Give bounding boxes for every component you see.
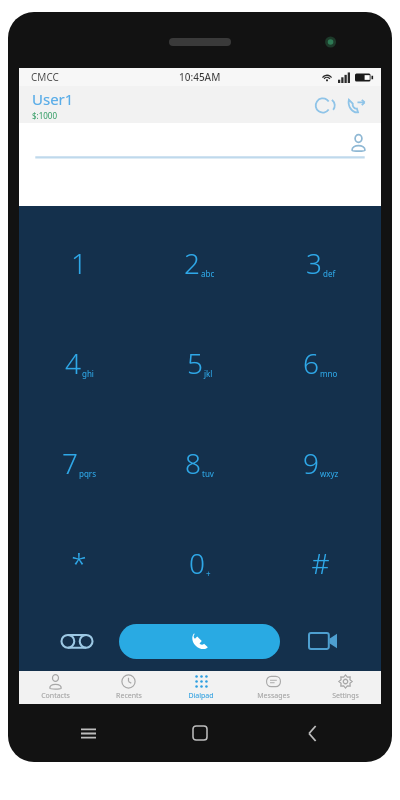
staticText: 0 [189,544,205,582]
button[interactable]: Settings [309,671,381,704]
staticText: Contacts [41,691,70,701]
staticText: + [206,568,211,579]
staticText: CMCC [31,70,59,84]
button[interactable]: 7 [19,413,139,513]
button[interactable]: 0 [139,513,260,613]
staticText: jkl [204,368,213,379]
button[interactable]: 9 [260,413,381,513]
button[interactable]: * [19,513,139,613]
staticText: $:1000 [32,110,58,121]
other: Add contact [347,131,369,153]
button[interactable]: 6 [260,313,381,413]
staticText: 5 [187,344,203,382]
button[interactable]: 1 [19,212,139,313]
button[interactable]: 4 [19,313,139,413]
button[interactable]: 3 [260,212,381,313]
staticText: Dialpad [188,691,214,701]
staticText: 6 [303,344,319,382]
staticText: * [71,544,87,582]
staticText: abc [201,268,215,279]
staticText: # [311,544,330,582]
staticText: 1 [71,244,87,282]
staticText: Recents [116,691,142,701]
button[interactable]: Do not disturb [307,90,337,120]
button[interactable]: Contacts [19,671,92,704]
button[interactable]: Add contact [19,123,381,160]
button[interactable]: Back [256,704,368,762]
staticText: mno [320,368,338,379]
staticText: 4 [65,344,81,382]
staticText: Messages [257,691,290,701]
staticText: 8 [185,444,201,482]
staticText: 2 [184,244,200,282]
button[interactable]: # [260,513,381,613]
staticText: ghi [82,368,94,379]
staticText: def [323,268,336,279]
staticText: 9 [303,444,319,482]
button[interactable]: Messages [237,671,309,704]
button[interactable]: Call [119,624,280,659]
button[interactable]: Video call [280,613,365,669]
button[interactable]: Home [144,704,256,762]
staticText: tuv [202,468,214,479]
button[interactable]: 2 [139,212,260,313]
button[interactable]: 8 [139,413,260,513]
button[interactable]: 5 [139,313,260,413]
staticText: Settings [332,691,359,701]
staticText: wxyz [320,468,339,479]
staticText: User1 [32,89,74,109]
staticText: 7 [62,444,78,482]
button[interactable]: Call forwarding [341,90,371,120]
button[interactable]: Menu [32,704,144,762]
staticText: 3 [306,244,322,282]
button[interactable]: Dialpad [165,671,237,704]
staticText: pqrs [79,468,96,479]
button[interactable]: Recents [92,671,165,704]
staticText: 10:45AM [179,70,221,84]
button[interactable]: Voicemail [35,613,119,669]
